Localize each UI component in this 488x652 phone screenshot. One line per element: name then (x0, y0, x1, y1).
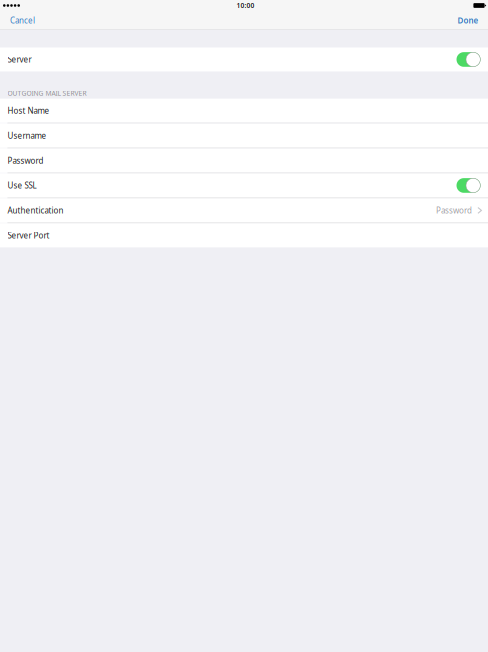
button[interactable]: Password (0, 149, 488, 172)
staticText: OUTGOING MAIL SERVER (7, 89, 86, 98)
staticText: Server Port (7, 230, 49, 241)
staticText: Password (7, 155, 43, 166)
staticText: Use SSL (7, 180, 36, 191)
staticText: Done (457, 15, 478, 26)
staticText: Username (7, 130, 46, 141)
staticText: Authentication (7, 205, 63, 216)
button[interactable]: Username (0, 124, 488, 147)
button[interactable]: Cancel (0, 11, 43, 30)
staticText: Host Name (7, 105, 49, 116)
button[interactable]: Host Name (0, 99, 488, 123)
button[interactable]: Use SSL (456, 178, 480, 193)
staticText: Server (7, 54, 31, 65)
button[interactable]: Server (456, 52, 480, 67)
button[interactable]: Server Port (0, 223, 488, 247)
staticText: Password (436, 205, 472, 216)
staticText: Cancel (10, 15, 35, 26)
staticText: 10:00 (236, 1, 254, 10)
button[interactable]: Authentication (0, 198, 488, 222)
button[interactable]: Done (449, 11, 488, 30)
